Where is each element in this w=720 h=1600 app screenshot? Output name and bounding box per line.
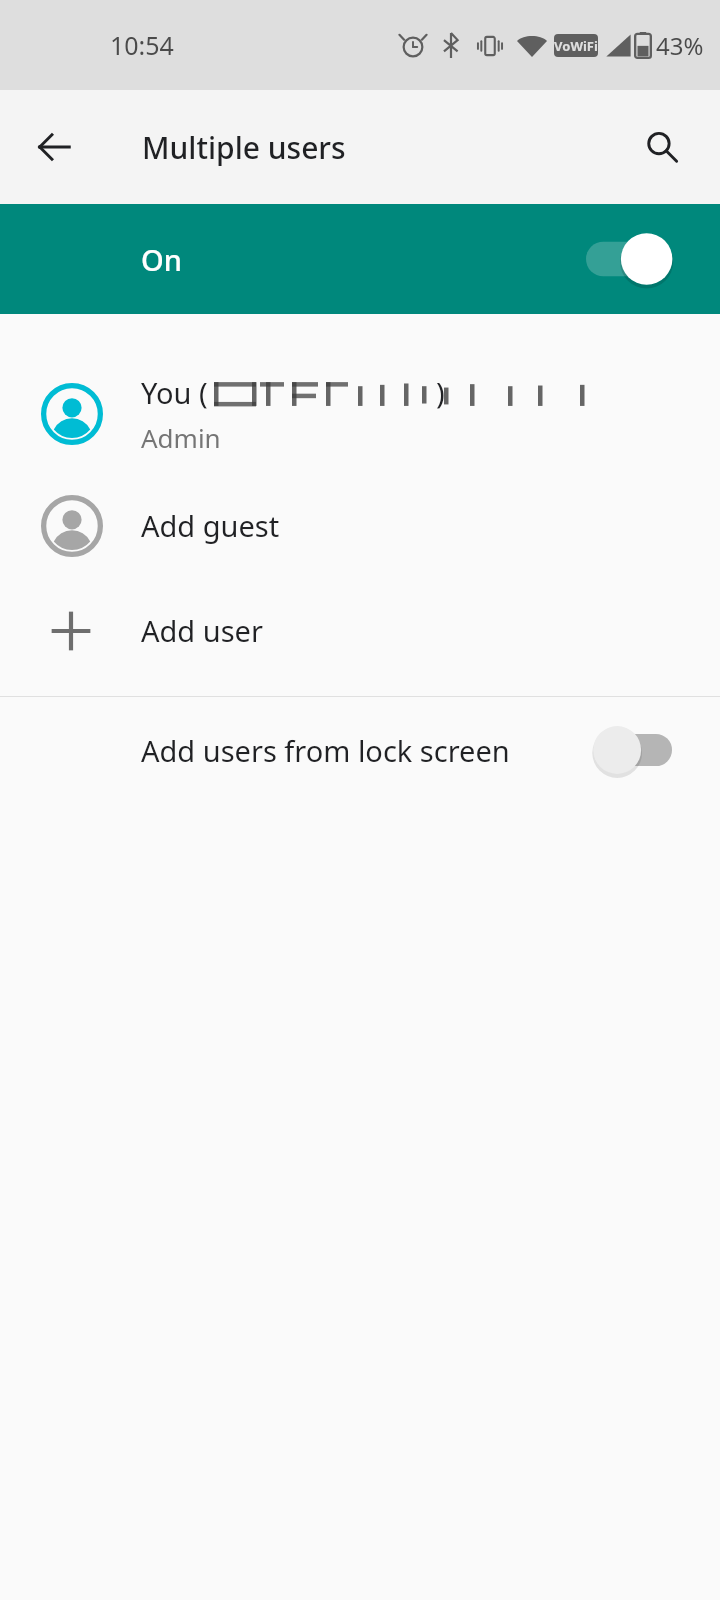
- staticText: Multiple users: [142, 127, 346, 168]
- staticText: Add users from lock screen: [141, 731, 510, 770]
- button[interactable]: Back: [22, 115, 86, 179]
- staticText: Admin: [141, 420, 221, 455]
- button[interactable]: You (: [0, 355, 720, 473]
- button[interactable]: Search: [632, 117, 692, 177]
- button[interactable]: Add users from lock screen: [0, 697, 720, 803]
- staticText: Add user: [141, 611, 263, 650]
- staticText: On: [141, 240, 182, 279]
- staticText: VoWiFi: [554, 37, 598, 55]
- button[interactable]: Add guest: [0, 473, 720, 578]
- staticText: Add guest: [141, 506, 280, 545]
- staticText: You (: [141, 373, 208, 412]
- staticText: 10:54: [110, 28, 174, 62]
- staticText: ): [436, 373, 445, 412]
- button[interactable]: On: [0, 204, 720, 314]
- staticText: 43%: [656, 29, 704, 62]
- button[interactable]: Add user: [0, 578, 720, 683]
